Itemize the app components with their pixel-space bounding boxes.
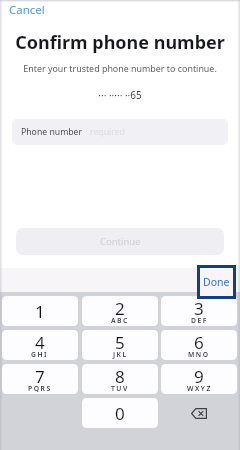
staticText: Continue xyxy=(100,235,141,248)
staticText: Cancel xyxy=(9,2,45,18)
staticText: 9 xyxy=(194,365,204,388)
button[interactable]: 5 xyxy=(82,330,158,360)
button[interactable]: Backspace xyxy=(161,398,237,428)
staticText: 1 xyxy=(35,300,45,323)
button[interactable]: Done xyxy=(197,265,236,299)
button[interactable]: 6 xyxy=(161,330,237,360)
button[interactable]: 7 xyxy=(2,364,78,394)
button[interactable]: Phone number xyxy=(12,119,228,145)
staticText: 7 xyxy=(35,365,45,388)
staticText: 2 xyxy=(115,297,125,320)
button[interactable]: 0 xyxy=(82,398,158,428)
staticText: ··· ····· ··65 xyxy=(0,88,240,102)
button[interactable]: 2 xyxy=(82,296,158,326)
staticText: PQRS xyxy=(28,384,52,393)
button[interactable]: 4 xyxy=(2,330,78,360)
button[interactable]: 3 xyxy=(161,296,237,326)
staticText: 3 xyxy=(194,297,204,320)
staticText: JKL xyxy=(113,350,128,359)
staticText: Phone number xyxy=(21,126,83,138)
staticText: 6 xyxy=(194,331,204,354)
staticText: GHI xyxy=(31,350,49,359)
staticText: DEF xyxy=(191,316,208,325)
staticText: required xyxy=(90,126,125,138)
staticText: 5 xyxy=(115,331,125,354)
button[interactable]: 9 xyxy=(161,364,237,394)
staticText: Confirm phone number xyxy=(0,30,240,55)
staticText: 4 xyxy=(35,331,45,354)
staticText: WXYZ xyxy=(187,384,212,393)
staticText: ABC xyxy=(111,316,129,325)
staticText: TUV xyxy=(111,384,129,393)
button[interactable]: 1 xyxy=(2,296,78,326)
staticText: Enter your trusted phone number to conti… xyxy=(0,62,240,74)
staticText: Done xyxy=(203,275,230,289)
button[interactable]: Continue xyxy=(16,228,224,255)
staticText: 8 xyxy=(115,365,125,388)
button[interactable]: Cancel xyxy=(7,0,47,20)
button[interactable]: 8 xyxy=(82,364,158,394)
staticText: MNO xyxy=(188,350,210,359)
staticText: 0 xyxy=(115,402,125,425)
